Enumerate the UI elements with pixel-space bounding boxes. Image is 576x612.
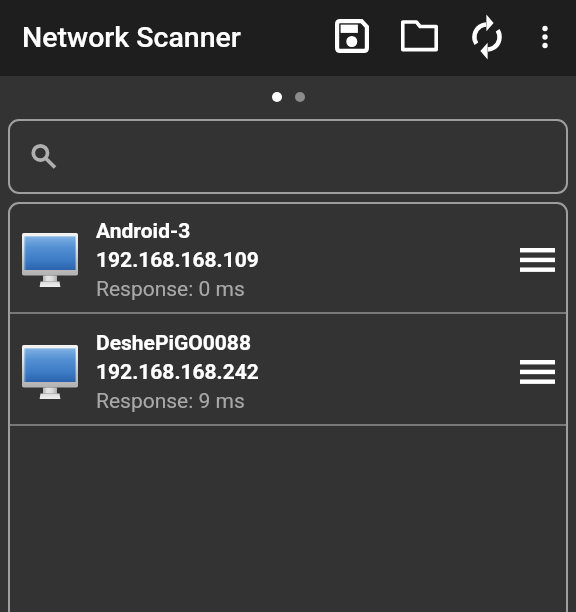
staticText: Android-3 192.168.168.109 Response: 0 ms xyxy=(96,219,259,301)
button[interactable]: Save xyxy=(325,0,379,76)
button[interactable]: Refresh xyxy=(460,0,514,76)
staticText: DeshePiGO0088 192.168.168.242 Response: … xyxy=(96,331,259,413)
button[interactable]: Android-3 192.168.168.109 Response: 0 ms xyxy=(8,202,568,312)
button[interactable]: Device options xyxy=(512,227,563,287)
button[interactable]: More options xyxy=(514,0,576,76)
button[interactable]: Device options xyxy=(512,339,563,399)
staticText: Network Scanner xyxy=(22,21,241,54)
button[interactable] xyxy=(8,119,568,194)
button[interactable]: Open folder xyxy=(379,0,460,76)
button[interactable]: DeshePiGO0088 192.168.168.242 Response: … xyxy=(8,314,568,424)
